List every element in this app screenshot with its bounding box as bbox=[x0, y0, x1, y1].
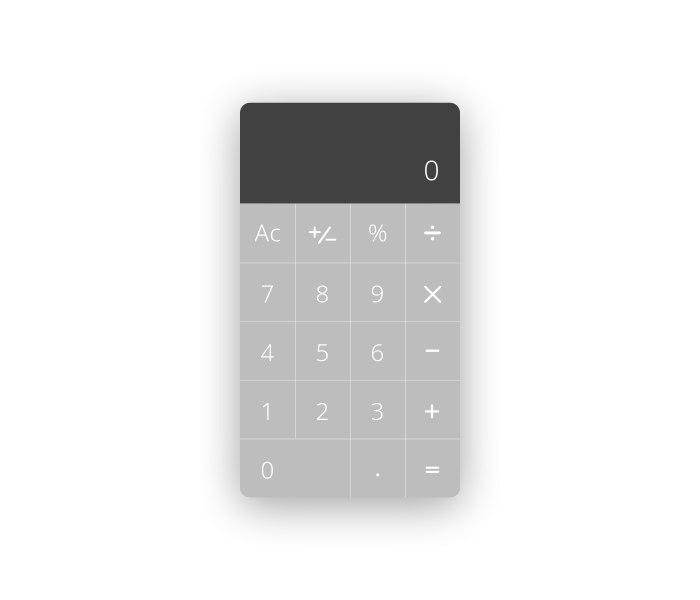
button[interactable]: 5 bbox=[295, 321, 350, 380]
button[interactable]: 1 bbox=[240, 380, 295, 439]
staticText: % bbox=[368, 216, 387, 248]
staticText: 7 bbox=[260, 277, 274, 309]
staticText: 4 bbox=[260, 336, 274, 368]
staticText: 5 bbox=[315, 336, 329, 368]
button[interactable]: Operator bbox=[405, 321, 460, 380]
button[interactable]: 4 bbox=[240, 321, 295, 380]
button[interactable]: Operator bbox=[405, 380, 460, 439]
button[interactable]: 0 bbox=[240, 439, 350, 497]
button[interactable]: All clear bbox=[240, 204, 295, 262]
staticText: 6 bbox=[370, 336, 384, 368]
staticText: 3 bbox=[370, 395, 384, 427]
button[interactable]: 2 bbox=[295, 380, 350, 439]
staticText: 0 bbox=[423, 151, 439, 188]
button[interactable]: Plus minus bbox=[295, 204, 350, 262]
staticText: 2 bbox=[315, 395, 329, 427]
button[interactable]: 7 bbox=[240, 262, 295, 321]
staticText: Ac bbox=[254, 216, 280, 248]
button[interactable]: Percent bbox=[350, 204, 405, 262]
button[interactable]: Decimal point bbox=[350, 439, 405, 497]
staticText: 8 bbox=[315, 277, 329, 309]
button[interactable]: 6 bbox=[350, 321, 405, 380]
button[interactable]: Divide bbox=[405, 204, 460, 262]
staticText: 1 bbox=[260, 395, 274, 427]
staticText: 9 bbox=[370, 277, 384, 309]
button[interactable]: Operator bbox=[405, 262, 460, 321]
button[interactable]: 9 bbox=[350, 262, 405, 321]
button[interactable]: 3 bbox=[350, 380, 405, 439]
button[interactable]: 8 bbox=[295, 262, 350, 321]
staticText: 0 bbox=[260, 453, 274, 485]
button[interactable]: Equals bbox=[405, 439, 460, 497]
